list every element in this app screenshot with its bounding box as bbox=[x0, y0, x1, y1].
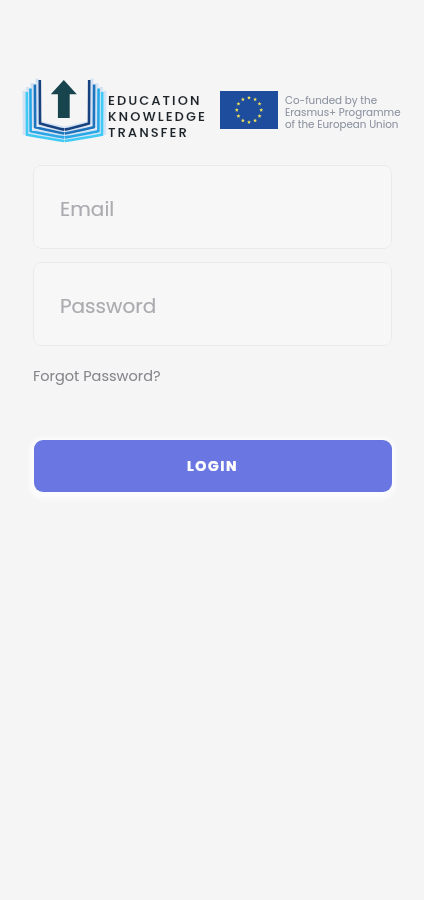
staticText: Co-funded by the Erasmus+ Programme of t… bbox=[285, 93, 401, 131]
button[interactable]: LOGIN bbox=[34, 440, 392, 492]
staticText: Forgot Password? bbox=[33, 366, 161, 386]
button[interactable]: Email bbox=[33, 165, 392, 249]
button[interactable]: Forgot Password? bbox=[26, 362, 168, 390]
staticText: Email bbox=[60, 195, 115, 223]
other: European Union flag bbox=[220, 91, 278, 129]
staticText: Password bbox=[60, 292, 157, 320]
button[interactable]: Password bbox=[33, 262, 392, 346]
other: Education Knowledge Transfer logo bbox=[24, 76, 104, 142]
staticText: LOGIN bbox=[187, 456, 239, 476]
staticText: EDUCATION KNOWLEDGE TRANSFER bbox=[108, 91, 207, 141]
